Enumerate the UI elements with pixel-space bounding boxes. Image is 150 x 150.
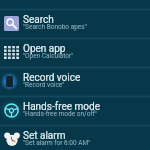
staticText: "Record voice" <box>23 81 150 89</box>
staticText: Search <box>23 14 150 26</box>
staticText: "Open Calculator" <box>23 52 150 60</box>
button[interactable]: Search <box>0 9 150 38</box>
staticText: "Hands-free mode on/off" <box>23 110 150 118</box>
button[interactable]: Set alarm <box>0 125 150 150</box>
staticText: Record voice <box>23 72 150 84</box>
button[interactable]: Hands-free mode <box>0 96 150 125</box>
button[interactable]: Record voice <box>0 67 150 96</box>
staticText: Open app <box>23 43 150 55</box>
staticText: Set alarm <box>23 130 150 142</box>
staticText: Hands-free mode <box>23 101 150 113</box>
other: Set alarm <box>0 125 22 150</box>
button[interactable]: Open app <box>0 38 150 67</box>
other: Search <box>0 9 22 38</box>
staticText: "Set alarm for 6:00 AM" <box>23 139 150 147</box>
other: Record voice <box>0 67 22 96</box>
staticText: "Search Bonobo apes" <box>23 23 150 31</box>
other: Hands-free mode <box>0 96 22 125</box>
other: Open app <box>0 38 22 67</box>
